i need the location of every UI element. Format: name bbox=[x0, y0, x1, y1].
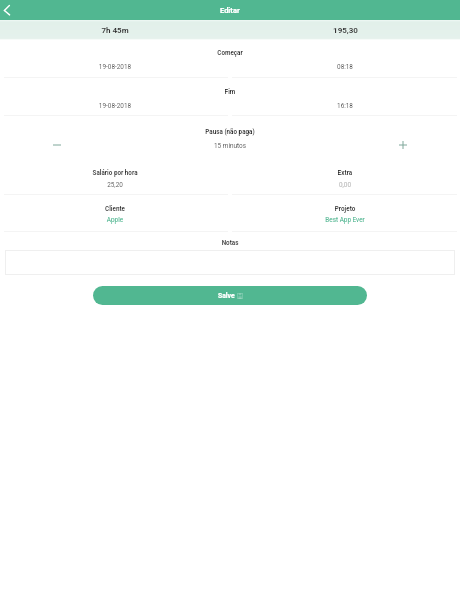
button[interactable]: 19-08-2018 bbox=[0, 63, 230, 73]
staticText: 0,00 bbox=[230, 181, 460, 189]
staticText: Fim bbox=[0, 88, 460, 95]
button[interactable]: Back bbox=[0, 0, 20, 20]
staticText: Projeto bbox=[230, 205, 460, 212]
staticText: 19-08-2018 bbox=[0, 63, 230, 71]
staticText: Salário por hora bbox=[0, 169, 230, 176]
staticText: Notas bbox=[0, 239, 460, 246]
button[interactable]: Best App Ever bbox=[230, 216, 460, 226]
button[interactable]: Increase break bbox=[395, 137, 411, 153]
staticText: Extra bbox=[230, 169, 460, 176]
staticText: Salve bbox=[218, 292, 235, 300]
staticText: 25,20 bbox=[0, 181, 230, 189]
staticText: Apple bbox=[0, 216, 230, 224]
button[interactable]: Salve bbox=[93, 286, 367, 305]
staticText: Pausa (não paga) bbox=[0, 128, 460, 135]
button[interactable]: 08:18 bbox=[230, 63, 460, 73]
button[interactable]: 25,20 bbox=[0, 181, 230, 191]
staticText: 195,30 bbox=[333, 26, 358, 35]
button[interactable]: Decrease break bbox=[49, 137, 65, 153]
button[interactable]: Notes bbox=[5, 250, 455, 275]
staticText: 7h 45m bbox=[101, 26, 129, 35]
button[interactable]: 19-08-2018 bbox=[0, 102, 230, 112]
staticText: 16:18 bbox=[230, 102, 460, 110]
button[interactable]: 16:18 bbox=[230, 102, 460, 112]
staticText: Começar bbox=[0, 49, 460, 56]
button[interactable]: 195,30 bbox=[230, 20, 460, 40]
staticText: 19-08-2018 bbox=[0, 102, 230, 110]
staticText: Cliente bbox=[0, 205, 230, 212]
staticText: Editar bbox=[220, 6, 240, 15]
button[interactable]: Apple bbox=[0, 216, 230, 226]
staticText: 08:18 bbox=[230, 63, 460, 71]
staticText: Best App Ever bbox=[230, 216, 460, 224]
button[interactable]: 7h 45m bbox=[0, 20, 230, 40]
button[interactable]: 0,00 bbox=[230, 181, 460, 191]
staticText: 15 minutos bbox=[0, 142, 460, 150]
button[interactable]: 15 minutos bbox=[0, 142, 460, 152]
